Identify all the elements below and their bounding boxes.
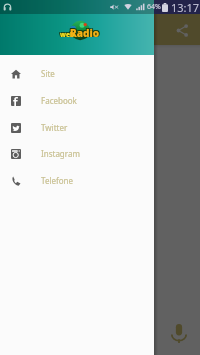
staticText: web — [61, 30, 76, 39]
staticText: Radio — [71, 26, 101, 40]
staticText: Facebook — [41, 95, 77, 106]
staticText: 64% — [147, 2, 161, 12]
staticText: Radio — [69, 26, 99, 40]
button[interactable]: Instagram — [0, 140, 154, 167]
staticText: Twitter — [41, 122, 68, 133]
button[interactable]: Site — [0, 60, 154, 87]
staticText: Radio — [71, 25, 101, 39]
staticText: Radio — [69, 25, 99, 39]
staticText: web — [59, 30, 74, 39]
staticText: Radio — [70, 26, 100, 40]
staticText: web — [60, 30, 75, 39]
button[interactable]: Voice search — [165, 319, 193, 347]
button[interactable]: Telefone — [0, 167, 154, 194]
staticText: Site — [41, 68, 55, 79]
staticText: web — [59, 29, 74, 38]
staticText: Instagram — [41, 148, 80, 159]
staticText: 13:17 — [171, 0, 200, 14]
button[interactable]: Facebook — [0, 87, 154, 114]
staticText: web — [61, 29, 76, 38]
button[interactable]: Twitter — [0, 114, 154, 141]
button[interactable]: Share — [170, 18, 194, 42]
staticText: Telefone — [41, 175, 74, 186]
